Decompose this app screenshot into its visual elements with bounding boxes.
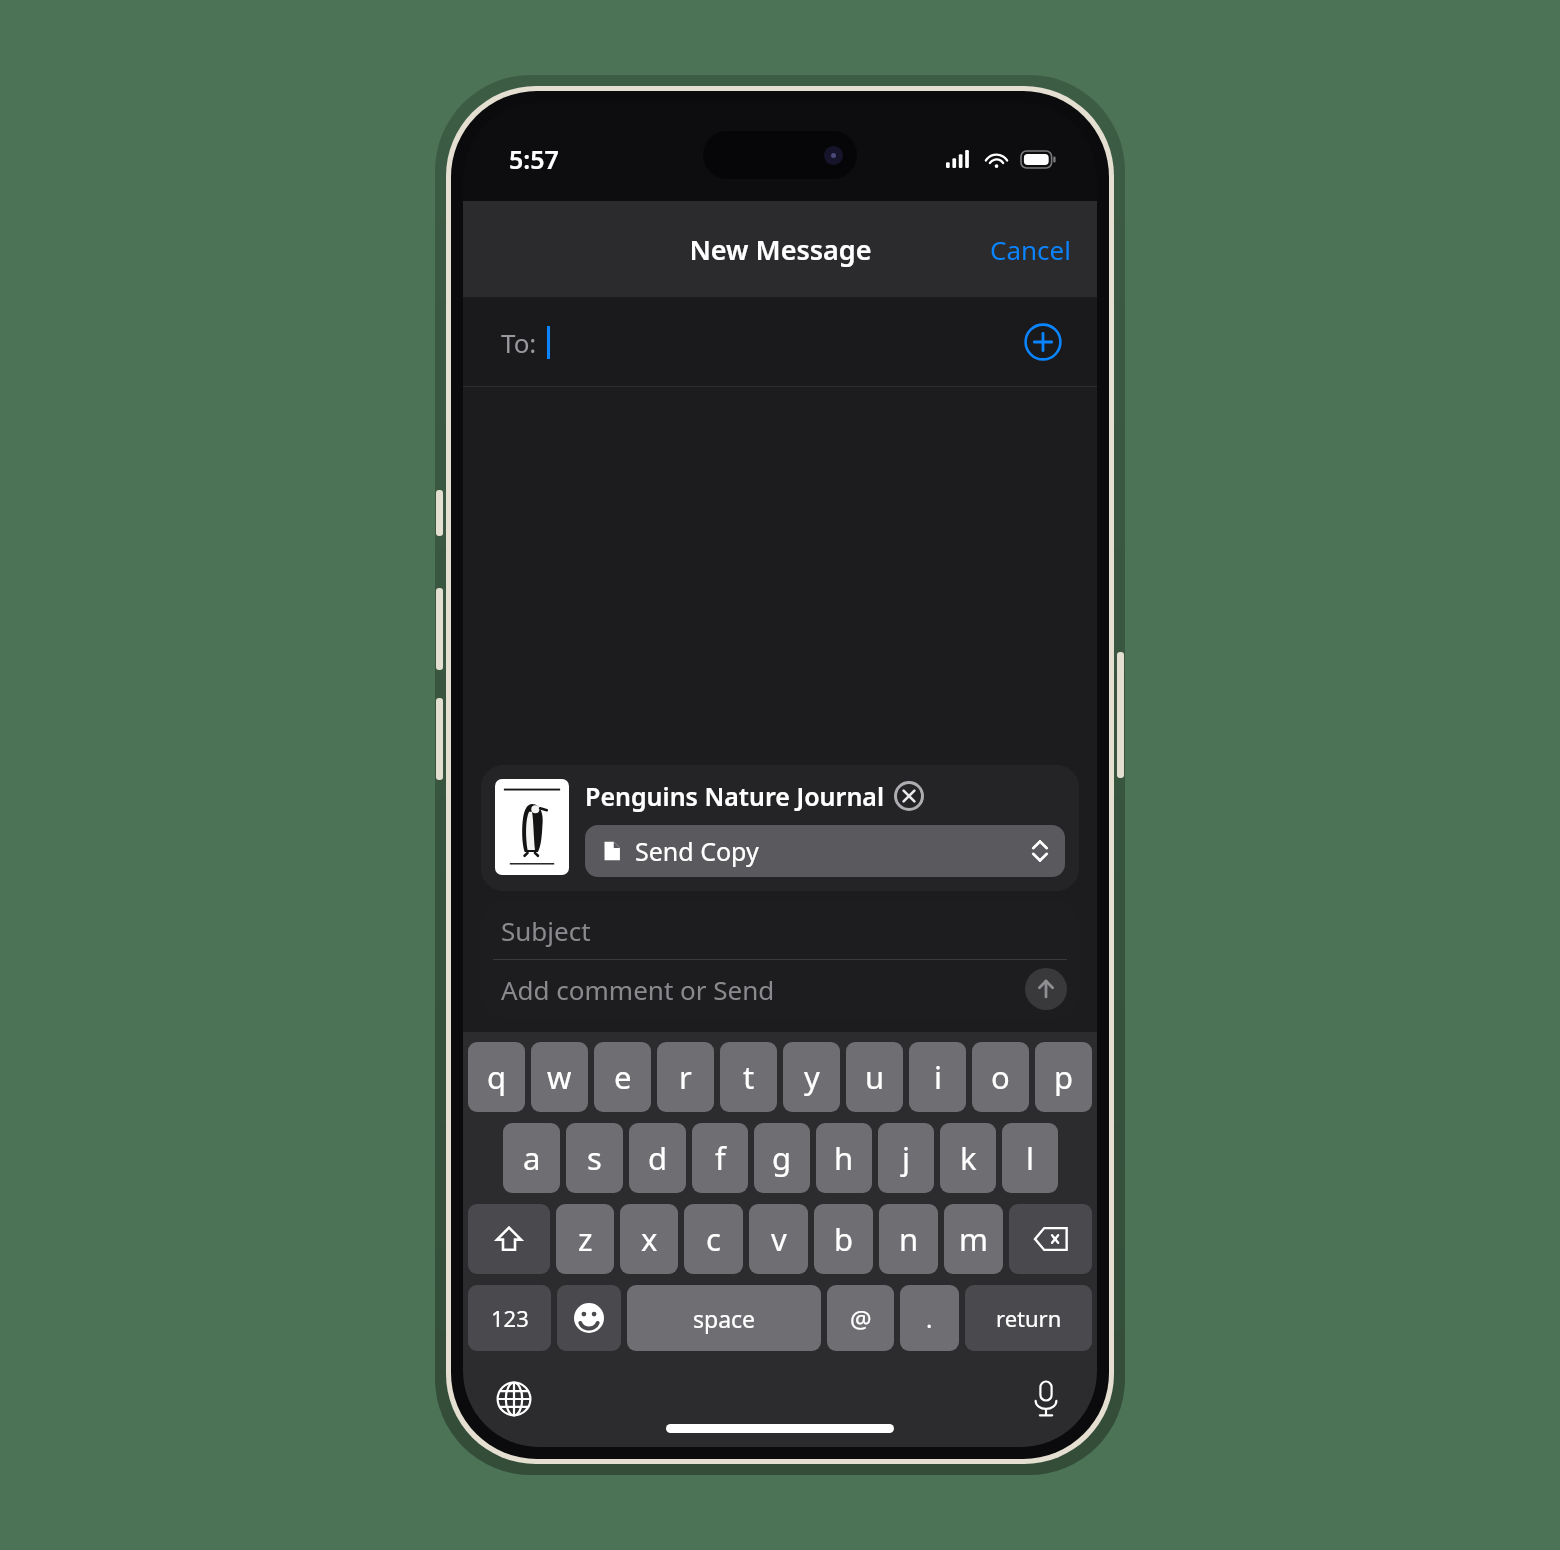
button[interactable]: Subject <box>481 901 1079 959</box>
button[interactable]: s <box>566 1123 623 1193</box>
button[interactable]: Send <box>1025 968 1067 1010</box>
staticText: 123 <box>491 1303 529 1333</box>
button[interactable]: u <box>846 1042 903 1112</box>
staticText: return <box>996 1303 1062 1333</box>
button[interactable]: d <box>629 1123 686 1193</box>
button[interactable]: Dictate <box>1021 1374 1071 1424</box>
button[interactable]: t <box>720 1042 777 1112</box>
staticText: n <box>899 1218 919 1260</box>
staticText: o <box>991 1056 1010 1098</box>
staticText: y <box>804 1056 820 1098</box>
staticText: m <box>959 1218 988 1260</box>
button[interactable]: w <box>531 1042 588 1112</box>
button[interactable]: space <box>627 1285 821 1351</box>
staticText: To: <box>501 325 537 360</box>
button[interactable]: g <box>754 1123 810 1193</box>
staticText: c <box>706 1218 721 1260</box>
staticText: f <box>715 1137 726 1179</box>
staticText: Send Copy <box>635 834 1031 868</box>
staticText: w <box>547 1056 572 1098</box>
button[interactable]: l <box>1002 1123 1058 1193</box>
staticText: e <box>614 1056 632 1098</box>
staticText: Penguins Nature Journal <box>585 779 885 813</box>
button[interactable]: x <box>620 1204 678 1274</box>
button[interactable]: c <box>684 1204 743 1274</box>
staticText: b <box>834 1218 854 1260</box>
staticText: s <box>587 1137 602 1179</box>
button[interactable]: n <box>879 1204 938 1274</box>
staticText: q <box>487 1056 507 1098</box>
button[interactable]: To: <box>463 297 1097 387</box>
button[interactable]: Remove attachment <box>893 780 925 812</box>
button[interactable]: Backspace <box>1009 1204 1092 1274</box>
staticText: l <box>1026 1137 1034 1179</box>
button[interactable]: Add contact <box>1023 322 1063 362</box>
button[interactable]: p <box>1035 1042 1092 1112</box>
staticText: Subject <box>501 913 591 948</box>
button[interactable]: h <box>816 1123 872 1193</box>
staticText: v <box>771 1218 787 1260</box>
button[interactable]: m <box>944 1204 1003 1274</box>
staticText: space <box>693 1303 756 1334</box>
button[interactable]: 123 <box>468 1285 551 1351</box>
button[interactable]: a <box>503 1123 560 1193</box>
button[interactable]: e <box>594 1042 651 1112</box>
button[interactable]: r <box>657 1042 714 1112</box>
button[interactable]: v <box>749 1204 808 1274</box>
button[interactable]: Cancel <box>964 218 1097 281</box>
staticText: Cancel <box>990 232 1071 267</box>
button[interactable]: return <box>965 1285 1092 1351</box>
button[interactable]: Send Copy <box>585 825 1065 877</box>
button[interactable]: Change keyboard <box>489 1374 539 1424</box>
staticText: New Message <box>689 231 872 268</box>
button[interactable]: @ <box>827 1285 894 1351</box>
button[interactable]: Shift <box>468 1204 550 1274</box>
button[interactable]: . <box>900 1285 959 1351</box>
staticText: g <box>772 1137 792 1179</box>
staticText: i <box>934 1056 942 1098</box>
button[interactable]: Add comment or Send <box>501 972 775 1007</box>
button[interactable]: q <box>468 1042 525 1112</box>
staticText: u <box>865 1056 885 1098</box>
button[interactable]: o <box>972 1042 1029 1112</box>
staticText: a <box>523 1137 541 1179</box>
staticText: k <box>960 1137 977 1179</box>
staticText: x <box>641 1218 658 1260</box>
staticText: j <box>902 1137 910 1179</box>
staticText: h <box>834 1137 854 1179</box>
staticText: d <box>648 1137 668 1179</box>
staticText: @ <box>850 1302 872 1335</box>
staticText: t <box>743 1056 755 1098</box>
button[interactable]: f <box>692 1123 748 1193</box>
staticText: r <box>679 1056 692 1098</box>
button[interactable]: Emoji <box>557 1285 621 1351</box>
staticText: p <box>1054 1056 1074 1098</box>
button[interactable]: Penguins Nature Journal cover <box>495 779 569 875</box>
button[interactable]: b <box>814 1204 873 1274</box>
staticText: 5:57 <box>509 142 559 176</box>
button[interactable]: y <box>783 1042 840 1112</box>
button[interactable]: i <box>909 1042 966 1112</box>
button[interactable]: z <box>556 1204 614 1274</box>
button[interactable]: k <box>940 1123 996 1193</box>
staticText: z <box>578 1218 593 1260</box>
staticText: . <box>926 1302 933 1335</box>
button[interactable]: j <box>878 1123 934 1193</box>
